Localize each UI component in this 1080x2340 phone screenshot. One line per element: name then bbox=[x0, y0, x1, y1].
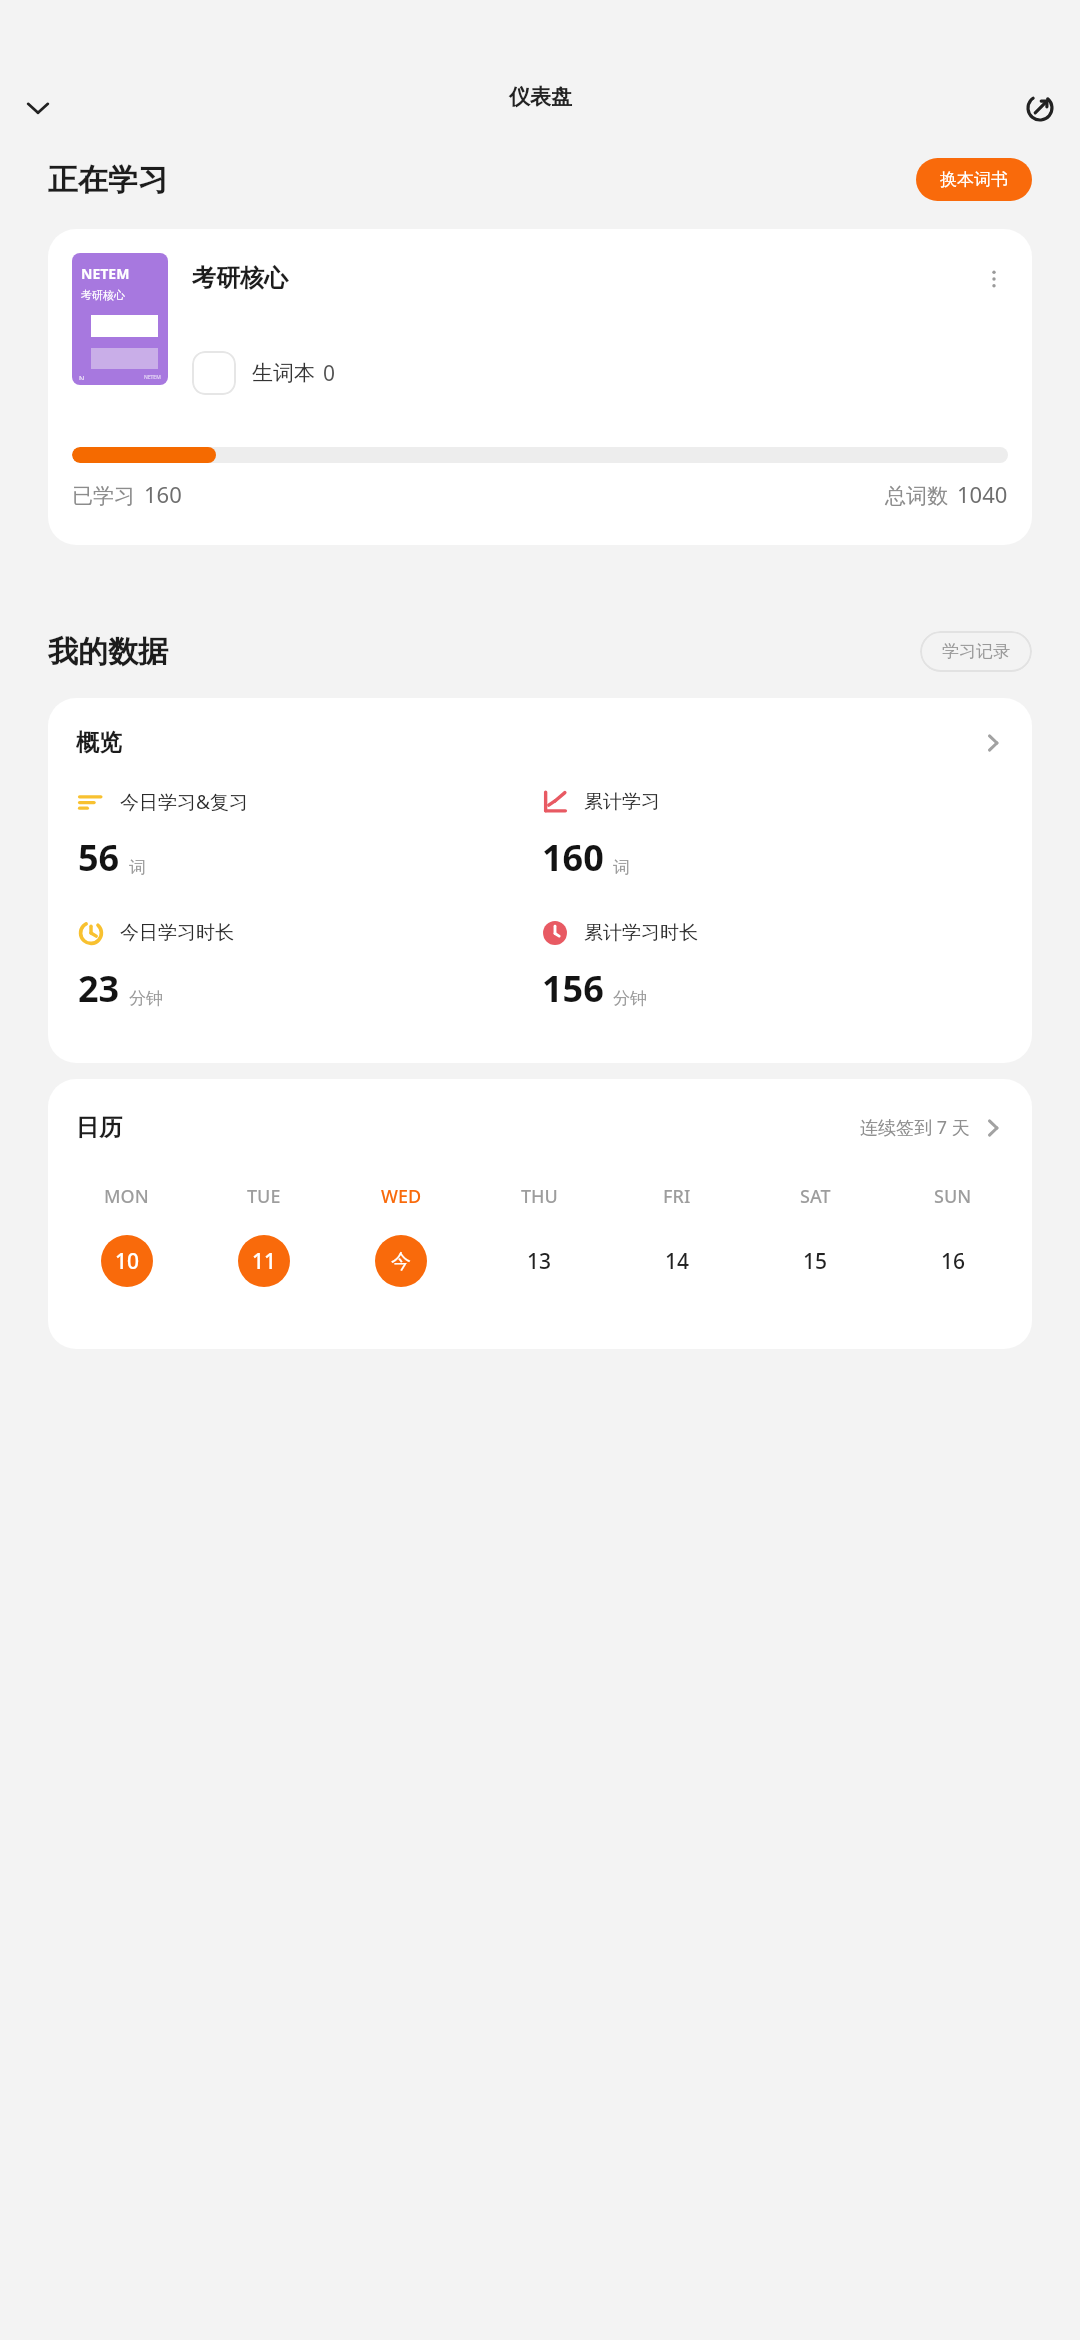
staticText: 词 bbox=[129, 857, 146, 878]
staticText: MON bbox=[104, 1184, 149, 1209]
staticText: 56 bbox=[78, 833, 120, 882]
staticText: 160 bbox=[542, 833, 604, 882]
staticText: FRI bbox=[663, 1184, 691, 1209]
staticText: 仪表盘 bbox=[509, 84, 572, 110]
staticText: 15 bbox=[803, 1247, 828, 1276]
staticText: 今日学习时长 bbox=[120, 921, 234, 945]
staticText: 156 bbox=[542, 964, 604, 1013]
staticText: 11 bbox=[252, 1247, 277, 1276]
staticText: 14 bbox=[665, 1247, 690, 1276]
staticText: 今 bbox=[391, 1249, 411, 1274]
staticText: 考研核心 bbox=[192, 263, 288, 293]
staticText: 学习记录 bbox=[942, 641, 1010, 662]
button[interactable]: 累计学习 bbox=[540, 787, 1004, 882]
staticText: N bbox=[79, 374, 85, 380]
button[interactable]: Share bbox=[1016, 84, 1064, 132]
staticText: 已学习 bbox=[72, 483, 135, 509]
button[interactable]: SUN bbox=[884, 1184, 1022, 1287]
button[interactable]: 累计学习时长 bbox=[540, 918, 1004, 1013]
staticText: 0 bbox=[323, 359, 336, 388]
staticText: 考研核心 bbox=[81, 288, 125, 302]
button[interactable]: MON bbox=[58, 1184, 195, 1287]
staticText: TUE bbox=[247, 1184, 281, 1209]
staticText: NETEM bbox=[81, 264, 130, 283]
staticText: 正在学习 bbox=[48, 161, 168, 199]
button[interactable]: Collapse bbox=[14, 84, 62, 132]
button[interactable]: 学习记录 bbox=[920, 631, 1032, 672]
staticText: 我的数据 bbox=[48, 633, 168, 671]
button[interactable]: THU bbox=[470, 1184, 608, 1287]
staticText: 词 bbox=[613, 857, 630, 878]
staticText: 23 bbox=[78, 964, 120, 1013]
staticText: 10 bbox=[115, 1247, 140, 1276]
staticText: 换本词书 bbox=[940, 169, 1008, 190]
staticText: 生词本 bbox=[252, 360, 315, 386]
button[interactable]: SAT bbox=[746, 1184, 884, 1287]
staticText: 1040 bbox=[957, 479, 1008, 509]
staticText: 累计学习时长 bbox=[584, 921, 698, 945]
staticText: 160 bbox=[144, 479, 182, 509]
staticText: 连续签到 7 天 bbox=[860, 1115, 970, 1140]
staticText: 今日学习&复习 bbox=[120, 789, 248, 815]
button[interactable]: WED bbox=[332, 1184, 470, 1287]
button[interactable]: TUE bbox=[195, 1184, 332, 1287]
staticText: 分钟 bbox=[613, 988, 647, 1009]
button[interactable]: 今日学习时长 bbox=[76, 918, 540, 1013]
staticText: WED bbox=[381, 1184, 422, 1209]
staticText: 日历 bbox=[76, 1113, 122, 1142]
button[interactable]: NETEM bbox=[48, 229, 1032, 545]
button[interactable]: 换本词书 bbox=[916, 158, 1032, 201]
button[interactable]: FRI bbox=[608, 1184, 746, 1287]
button[interactable]: More options bbox=[978, 263, 1010, 295]
staticText: 13 bbox=[527, 1247, 552, 1276]
staticText: 总词数 bbox=[885, 483, 948, 509]
staticText: 概览 bbox=[76, 728, 122, 757]
button[interactable]: 生词本 bbox=[192, 351, 336, 395]
button[interactable]: 今日学习&复习 bbox=[76, 787, 540, 882]
staticText: 分钟 bbox=[129, 988, 163, 1009]
button[interactable]: 概览 bbox=[76, 728, 1004, 757]
staticText: 16 bbox=[941, 1247, 966, 1276]
button[interactable]: 日历 bbox=[76, 1113, 1004, 1142]
staticText: THU bbox=[521, 1184, 558, 1209]
staticText: NETEM bbox=[144, 374, 161, 380]
staticText: SAT bbox=[800, 1184, 831, 1209]
staticText: 累计学习 bbox=[584, 790, 660, 814]
staticText: SUN bbox=[934, 1184, 972, 1209]
